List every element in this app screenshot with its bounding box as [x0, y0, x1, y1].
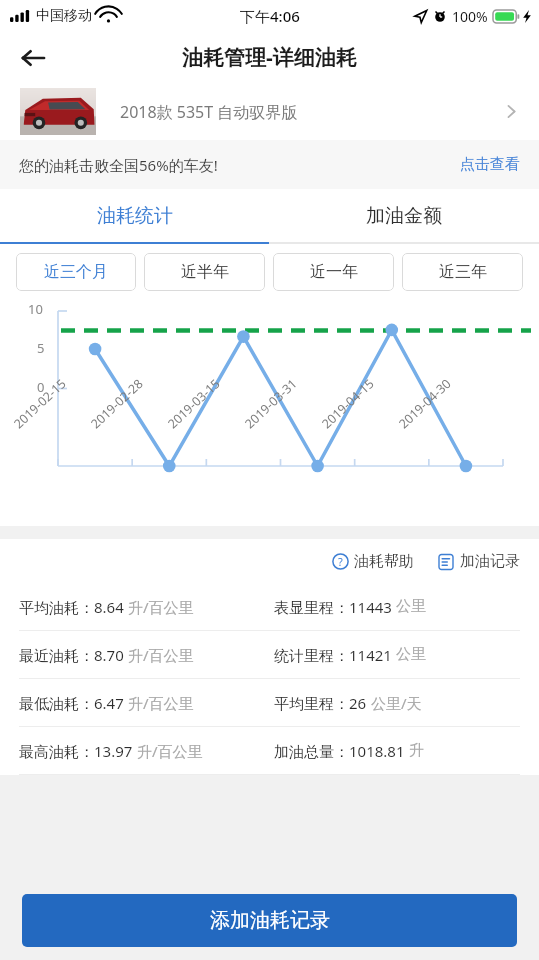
button[interactable]: 加油记录: [438, 552, 520, 571]
staticText: 最高油耗：13.97: [19, 741, 137, 761]
staticText: 添加油耗记录: [210, 908, 330, 933]
staticText: 2019-02-28: [87, 375, 147, 432]
button[interactable]: 近一年: [273, 253, 394, 291]
staticText: 您的油耗击败全国56%的车友!: [19, 155, 218, 175]
staticText: 油耗统计: [97, 204, 173, 228]
staticText: 统计里程：11421: [274, 645, 396, 665]
staticText: 2019-02-15: [10, 375, 70, 432]
staticText: 最近油耗：8.70: [19, 645, 128, 665]
staticText: 近三个月: [44, 262, 108, 282]
button[interactable]: 近半年: [144, 253, 265, 291]
staticText: 近一年: [310, 262, 358, 282]
staticText: 升/百公里: [128, 597, 194, 617]
staticText: 公里: [396, 645, 426, 664]
staticText: 最低油耗：6.47: [19, 693, 128, 713]
button[interactable]: 近三个月: [16, 253, 136, 291]
button[interactable]: 油耗统计: [0, 189, 269, 242]
staticText: 100%: [452, 7, 488, 26]
staticText: 加油金额: [366, 204, 442, 228]
staticText: 0: [37, 378, 45, 396]
staticText: 加油总量：1018.81: [274, 741, 409, 761]
staticText: 表显里程：11443: [274, 597, 396, 617]
staticText: ?: [338, 554, 343, 569]
staticText: 油耗帮助: [354, 552, 414, 571]
staticText: 2018款 535T 自动驭界版: [120, 101, 298, 123]
button[interactable]: 添加油耗记录: [22, 894, 517, 947]
staticText: 下午4:06: [240, 6, 300, 26]
staticText: 平均里程：26: [274, 693, 371, 713]
staticText: 近半年: [181, 262, 229, 282]
staticText: 升: [409, 741, 424, 760]
staticText: 近三年: [439, 262, 487, 282]
staticText: 5: [37, 339, 45, 357]
button[interactable]: ?: [332, 552, 414, 571]
button[interactable]: 您的油耗击败全国56%的车友!: [0, 140, 539, 189]
staticText: 平均油耗：8.64: [19, 597, 128, 617]
staticText: 点击查看: [460, 155, 520, 174]
staticText: 2019-03-31: [241, 375, 301, 432]
staticText: 加油记录: [460, 552, 520, 571]
staticText: 油耗管理-详细油耗: [182, 43, 357, 72]
staticText: 升/百公里: [128, 693, 194, 713]
staticText: 2019-03-15: [164, 375, 224, 432]
staticText: 公里: [396, 597, 426, 616]
other: More: [503, 103, 520, 120]
staticText: 公里/天: [371, 693, 422, 713]
button[interactable]: 2018款 535T 自动驭界版: [0, 83, 539, 140]
staticText: 升/百公里: [137, 741, 203, 761]
staticText: 10: [28, 300, 43, 318]
staticText: 2019-04-30: [395, 375, 455, 432]
staticText: 2019-04-15: [318, 375, 378, 432]
button[interactable]: 加油金额: [269, 189, 539, 242]
staticText: 中国移动: [36, 7, 92, 25]
staticText: 升/百公里: [128, 645, 194, 665]
button[interactable]: Back: [10, 35, 56, 81]
button[interactable]: 近三年: [402, 253, 523, 291]
